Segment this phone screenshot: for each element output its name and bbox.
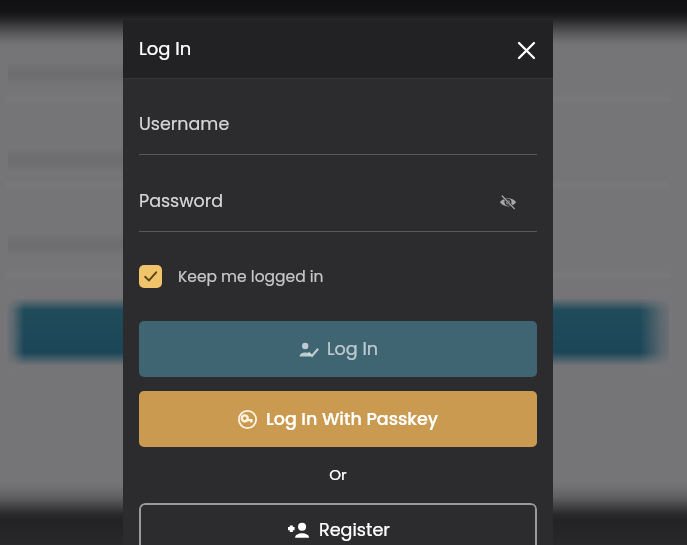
staticText: Password xyxy=(139,189,224,214)
staticText: Log In xyxy=(327,337,379,362)
button[interactable]: Log In With Passkey xyxy=(139,391,537,447)
button[interactable]: Log In xyxy=(139,321,537,377)
button[interactable]: Username xyxy=(139,104,537,155)
button[interactable]: Keep me logged in xyxy=(139,265,324,288)
button[interactable]: Register xyxy=(139,503,537,545)
staticText: Username xyxy=(139,112,230,137)
button[interactable]: Password xyxy=(139,181,537,232)
staticText: Register xyxy=(319,518,390,543)
button[interactable]: Show password xyxy=(495,189,521,215)
button[interactable]: Close xyxy=(510,34,542,66)
staticText: Log In With Passkey xyxy=(266,407,439,432)
staticText: Or xyxy=(123,464,553,485)
staticText: Log In xyxy=(139,36,192,61)
staticText: Keep me logged in xyxy=(178,266,324,288)
